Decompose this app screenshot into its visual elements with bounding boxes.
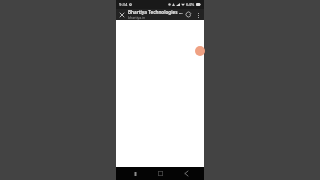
staticText: 9:34 <box>119 2 128 8</box>
button[interactable]: Close <box>118 11 126 19</box>
button[interactable]: Recent apps <box>128 167 142 180</box>
staticText: bhartiya.in <box>128 15 146 20</box>
button[interactable]: Bhartiya Technologies Link Sh. <box>128 9 183 20</box>
staticText: Bhartiya Technologies Link Sh. <box>128 9 183 15</box>
staticText: 64% <box>186 2 195 8</box>
button[interactable]: More options <box>194 11 202 19</box>
button[interactable]: Back <box>179 167 193 180</box>
button[interactable]: Home <box>153 167 167 180</box>
button[interactable]: Refresh <box>184 10 193 19</box>
